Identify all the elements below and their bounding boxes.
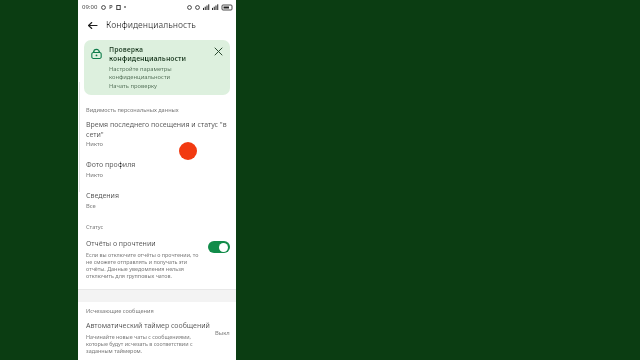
staticText: 09:00 bbox=[82, 3, 98, 11]
staticText: Исчезающие сообщения bbox=[86, 307, 154, 315]
button[interactable]: Закрыть bbox=[212, 45, 224, 57]
staticText: Выкл bbox=[215, 329, 230, 337]
staticText: Сведения bbox=[86, 191, 120, 201]
button[interactable]: Фото профиля bbox=[78, 158, 236, 181]
staticText: Все bbox=[86, 202, 96, 210]
staticText: Конфиденциальность bbox=[106, 19, 196, 31]
staticText: Если вы отключите отчёты о прочтении, то… bbox=[86, 251, 204, 279]
button[interactable]: Проверка конфиденциальности bbox=[84, 40, 230, 95]
staticText: Проверка конфиденциальности bbox=[109, 45, 212, 63]
staticText: Никто bbox=[86, 171, 104, 179]
staticText: Статус bbox=[86, 223, 104, 231]
button[interactable]: Назад bbox=[84, 17, 100, 33]
staticText: Видимость персональных данных bbox=[86, 106, 179, 114]
staticText: Начинайте новые чаты с сообщениями, кото… bbox=[86, 333, 211, 354]
button[interactable]: Сведения bbox=[78, 189, 236, 212]
staticText: Начать проверку bbox=[109, 82, 157, 90]
button[interactable]: Отчёты о прочтении bbox=[78, 237, 236, 281]
staticText: Отчёты о прочтении bbox=[86, 239, 156, 249]
button[interactable]: Отчёты о прочтении bbox=[208, 241, 230, 253]
staticText: Никто bbox=[86, 140, 104, 148]
staticText: Автоматический таймер сообщений bbox=[86, 321, 210, 331]
staticText: Время последнего посещения и статус "в с… bbox=[86, 120, 228, 139]
button[interactable]: Автоматический таймер сообщений bbox=[78, 319, 236, 356]
button[interactable]: Время последнего посещения и статус "в с… bbox=[78, 118, 236, 150]
staticText: P bbox=[109, 3, 113, 11]
staticText: Фото профиля bbox=[86, 160, 136, 170]
staticText: Настройте параметры конфиденциальности bbox=[109, 65, 212, 81]
